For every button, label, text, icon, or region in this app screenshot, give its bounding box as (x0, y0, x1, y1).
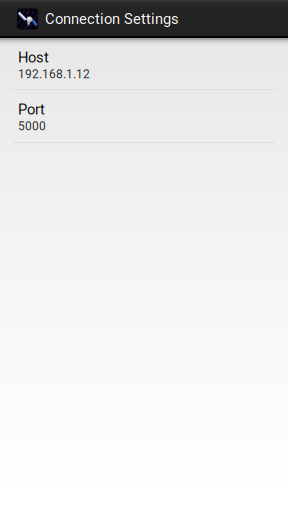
staticText: Host (18, 49, 49, 66)
button[interactable]: Host (0, 38, 288, 89)
button[interactable]: Port (0, 90, 288, 142)
staticText: 5000 (18, 119, 46, 133)
staticText: 192.168.1.12 (18, 67, 90, 81)
staticText: Connection Settings (45, 10, 179, 28)
button[interactable]: Connection Settings (0, 0, 288, 36)
staticText: Port (18, 101, 45, 118)
